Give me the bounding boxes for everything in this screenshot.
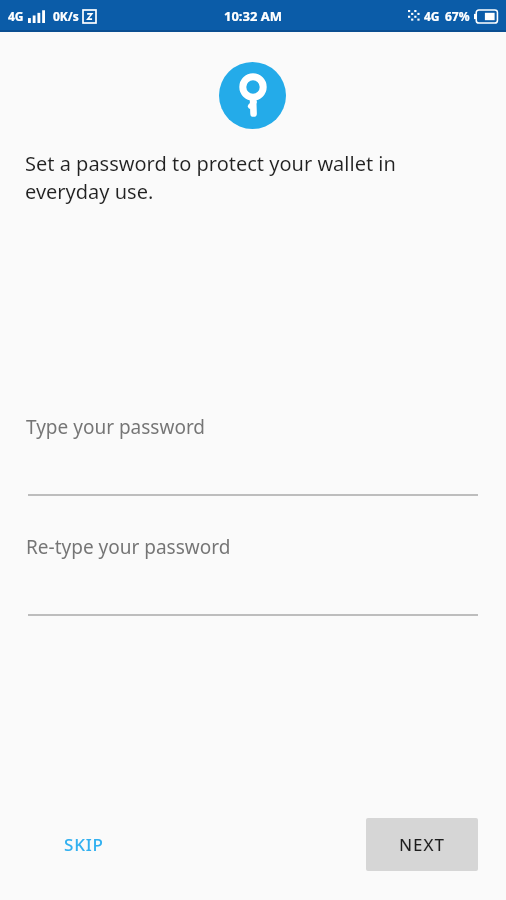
staticText: 0K/s xyxy=(53,8,79,24)
staticText: Type your password xyxy=(26,414,206,440)
button[interactable]: NEXT xyxy=(366,818,478,871)
staticText: 4G xyxy=(8,8,24,24)
staticText: 4G xyxy=(424,8,440,24)
staticText: 67% xyxy=(445,8,470,24)
button[interactable]: SKIP xyxy=(40,820,128,869)
staticText: Set a password to protect your wallet in… xyxy=(25,150,435,205)
staticText: 10:32 AM xyxy=(224,7,283,25)
staticText: Re-type your password xyxy=(26,534,231,560)
staticText: SKIP xyxy=(64,833,104,856)
other: Password key xyxy=(219,62,286,129)
staticText: NEXT xyxy=(399,833,445,856)
